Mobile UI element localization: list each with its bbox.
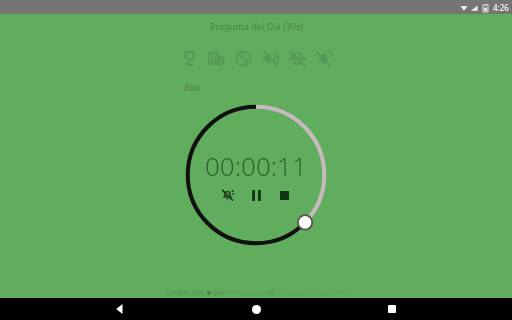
staticText: de	[265, 288, 277, 298]
button[interactable]: Stop	[276, 187, 292, 203]
button[interactable]: Mute	[258, 46, 282, 70]
staticText: 4:26	[493, 2, 509, 13]
staticText: Pregunta del Día (30s)	[210, 20, 303, 32]
button[interactable]: Pause	[248, 187, 264, 203]
staticText: por	[212, 288, 228, 298]
button[interactable]: Balance	[231, 46, 255, 70]
button[interactable]: Recents	[376, 298, 408, 320]
button[interactable]: Ana	[184, 80, 201, 92]
button[interactable]: Vibration off	[285, 46, 309, 70]
button[interactable]: Alarm off	[220, 187, 236, 203]
button[interactable]: Schedule	[204, 46, 228, 70]
staticText: Ana	[184, 80, 201, 92]
button[interactable]: Home	[240, 298, 272, 320]
staticText: 00:00:11	[205, 148, 307, 183]
button[interactable]: Trophy	[177, 46, 201, 70]
button[interactable]: Back	[104, 298, 136, 320]
button[interactable]: Notifications off	[312, 46, 336, 70]
staticText: Creado con	[166, 288, 206, 298]
